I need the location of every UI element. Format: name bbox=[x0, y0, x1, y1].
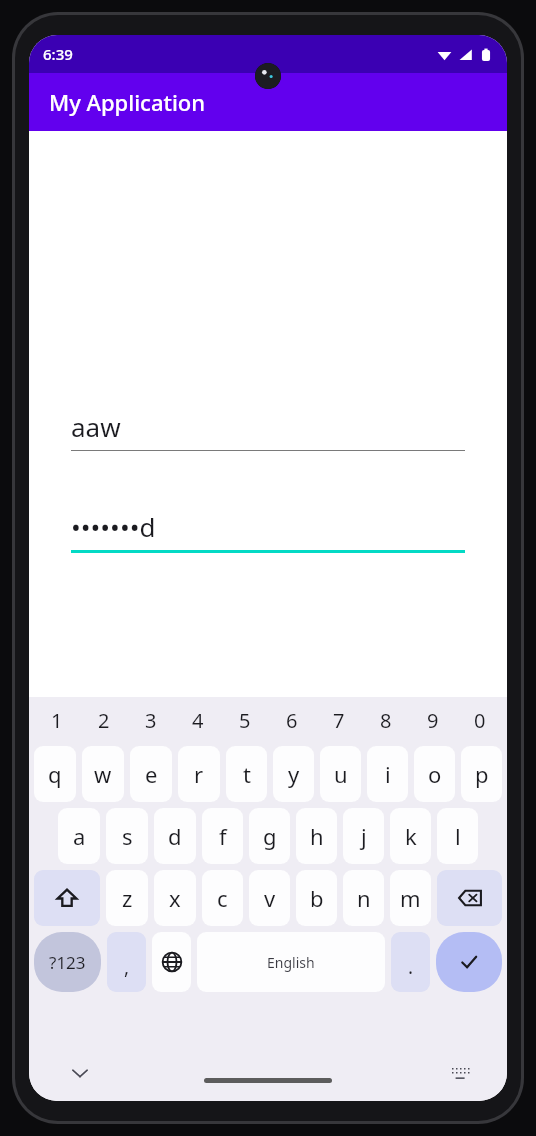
staticText: aaw bbox=[71, 409, 121, 444]
button[interactable]: z bbox=[106, 870, 148, 926]
staticText: 2 bbox=[98, 707, 110, 734]
button[interactable]: 4 bbox=[174, 697, 221, 743]
staticText: y bbox=[288, 759, 300, 789]
staticText: t bbox=[243, 759, 251, 789]
button[interactable]: j bbox=[343, 808, 384, 864]
staticText: a bbox=[73, 821, 86, 851]
staticText: p bbox=[475, 759, 489, 789]
button[interactable]: Change language bbox=[152, 932, 191, 992]
button[interactable]: Switch keyboard bbox=[445, 1058, 475, 1088]
button[interactable]: g bbox=[249, 808, 290, 864]
staticText: c bbox=[217, 883, 228, 913]
staticText: ?123 bbox=[49, 951, 86, 974]
staticText: f bbox=[219, 821, 227, 851]
button[interactable]: p bbox=[461, 746, 502, 802]
staticText: 0 bbox=[474, 707, 486, 734]
staticText: 4 bbox=[192, 707, 204, 734]
button[interactable]: s bbox=[106, 808, 148, 864]
staticText: e bbox=[145, 759, 158, 789]
staticText: . bbox=[408, 954, 414, 980]
staticText: o bbox=[428, 759, 442, 789]
button[interactable]: l bbox=[437, 808, 478, 864]
button[interactable]: m bbox=[390, 870, 431, 926]
button[interactable]: English bbox=[197, 932, 385, 992]
button[interactable]: c bbox=[202, 870, 243, 926]
button[interactable]: o bbox=[414, 746, 455, 802]
staticText: 1 bbox=[51, 707, 63, 734]
staticText: i bbox=[385, 759, 391, 789]
button[interactable]: a bbox=[58, 808, 100, 864]
button[interactable]: n bbox=[343, 870, 384, 926]
button[interactable]: x bbox=[154, 870, 196, 926]
staticText: r bbox=[194, 759, 204, 789]
button[interactable]: , bbox=[107, 932, 146, 992]
staticText: •••••••d bbox=[71, 509, 156, 544]
button[interactable]: y bbox=[273, 746, 314, 802]
button[interactable]: t bbox=[226, 746, 267, 802]
staticText: 9 bbox=[427, 707, 439, 734]
button[interactable]: . bbox=[391, 932, 430, 992]
staticText: g bbox=[263, 821, 277, 851]
button[interactable]: ?123 bbox=[34, 932, 101, 992]
button[interactable]: 3 bbox=[127, 697, 174, 743]
staticText: l bbox=[455, 821, 461, 851]
staticText: u bbox=[334, 759, 348, 789]
button[interactable]: f bbox=[202, 808, 243, 864]
button[interactable]: r bbox=[178, 746, 220, 802]
button[interactable]: e bbox=[130, 746, 172, 802]
button[interactable]: v bbox=[249, 870, 290, 926]
staticText: 6:39 bbox=[43, 44, 73, 64]
staticText: d bbox=[168, 821, 182, 851]
staticText: v bbox=[264, 883, 276, 913]
staticText: x bbox=[169, 883, 181, 913]
button[interactable]: 7 bbox=[315, 697, 362, 743]
button[interactable]: Shift bbox=[34, 870, 100, 926]
staticText: j bbox=[361, 821, 367, 851]
staticText: 5 bbox=[239, 707, 251, 734]
button[interactable]: w bbox=[82, 746, 124, 802]
staticText: 3 bbox=[145, 707, 157, 734]
staticText: b bbox=[310, 883, 324, 913]
staticText: 8 bbox=[380, 707, 392, 734]
button[interactable]: h bbox=[296, 808, 337, 864]
staticText: q bbox=[48, 759, 62, 789]
button[interactable]: 1 bbox=[33, 697, 80, 743]
staticText: z bbox=[122, 883, 133, 913]
staticText: English bbox=[267, 953, 315, 972]
button[interactable]: Backspace bbox=[437, 870, 502, 926]
button[interactable]: 0 bbox=[456, 697, 503, 743]
staticText: w bbox=[94, 759, 112, 789]
button[interactable]: u bbox=[320, 746, 361, 802]
button[interactable]: b bbox=[296, 870, 337, 926]
button[interactable]: q bbox=[34, 746, 76, 802]
button[interactable]: k bbox=[390, 808, 431, 864]
button[interactable]: 6 bbox=[268, 697, 315, 743]
staticText: k bbox=[405, 821, 417, 851]
staticText: My Application bbox=[49, 87, 206, 117]
button[interactable]: i bbox=[367, 746, 408, 802]
staticText: , bbox=[124, 954, 130, 980]
button[interactable]: •••••••d bbox=[71, 509, 465, 553]
button[interactable]: 2 bbox=[80, 697, 127, 743]
staticText: n bbox=[357, 883, 371, 913]
staticText: s bbox=[122, 821, 133, 851]
button[interactable]: Enter bbox=[436, 932, 502, 992]
button[interactable]: d bbox=[154, 808, 196, 864]
button[interactable]: Hide keyboard bbox=[65, 1058, 95, 1088]
button[interactable]: 8 bbox=[362, 697, 409, 743]
staticText: 7 bbox=[333, 707, 345, 734]
button[interactable]: 5 bbox=[221, 697, 268, 743]
staticText: h bbox=[310, 821, 324, 851]
button[interactable]: aaw bbox=[71, 409, 465, 451]
button[interactable]: 9 bbox=[409, 697, 456, 743]
staticText: 6 bbox=[286, 707, 298, 734]
staticText: m bbox=[400, 883, 421, 913]
